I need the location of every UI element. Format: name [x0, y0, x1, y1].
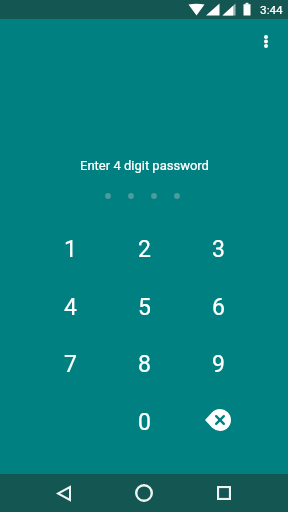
- button[interactable]: 3: [181, 220, 255, 278]
- staticText: Enter 4 digit password: [80, 158, 209, 173]
- staticText: 0: [138, 409, 151, 436]
- button[interactable]: More options: [245, 20, 287, 62]
- button[interactable]: 8: [107, 335, 181, 393]
- button[interactable]: 2: [107, 220, 181, 278]
- button[interactable]: 4: [33, 278, 107, 336]
- staticText: 3:44: [260, 3, 283, 17]
- button[interactable]: 9: [181, 335, 255, 393]
- button[interactable]: 6: [181, 278, 255, 336]
- staticText: 3: [212, 236, 225, 263]
- button[interactable]: 7: [33, 335, 107, 393]
- staticText: 9: [212, 351, 225, 378]
- staticText: 6: [212, 294, 225, 321]
- staticText: 8: [138, 351, 151, 378]
- button[interactable]: Home: [120, 474, 168, 512]
- button[interactable]: 0: [107, 393, 181, 451]
- button[interactable]: Recent apps: [200, 474, 248, 512]
- staticText: 4: [64, 294, 77, 321]
- button[interactable]: Backspace: [181, 391, 255, 449]
- staticText: 1: [64, 236, 77, 263]
- staticText: 2: [138, 236, 151, 263]
- staticText: 7: [64, 351, 77, 378]
- button[interactable]: Back: [40, 474, 88, 512]
- staticText: 5: [138, 294, 151, 321]
- button[interactable]: 5: [107, 278, 181, 336]
- button[interactable]: 1: [33, 220, 107, 278]
